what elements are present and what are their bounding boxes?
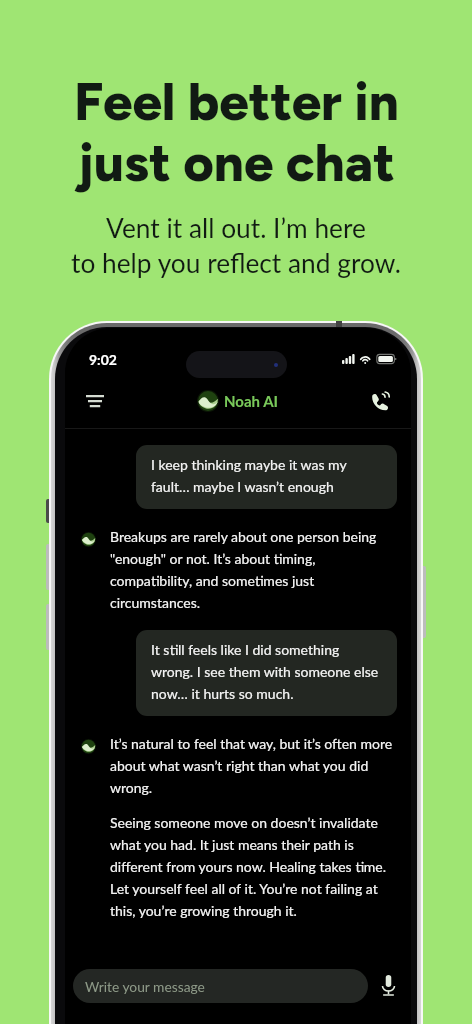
staticText: It still feels like I did something wron… xyxy=(151,641,383,702)
staticText: It’s natural to feel that way, but it’s … xyxy=(110,735,397,796)
staticText: Seeing someone move on doesn’t invalidat… xyxy=(110,814,399,919)
staticText: Feel better in just one chat xyxy=(74,70,399,194)
staticText: Vent it all out. I’m here to help you re… xyxy=(71,212,401,278)
button[interactable]: I keep thinking maybe it was my fault… m… xyxy=(136,445,397,509)
button[interactable]: Voice message xyxy=(374,972,402,1000)
button[interactable]: It still feels like I did something wron… xyxy=(136,630,397,716)
staticText: I keep thinking maybe it was my fault… m… xyxy=(151,456,383,495)
button[interactable]: Call xyxy=(360,385,392,417)
staticText: Breakups are rarely about one person bei… xyxy=(110,528,397,611)
button[interactable]: Write your message xyxy=(73,969,368,1003)
button[interactable]: Menu xyxy=(84,385,116,417)
staticText: Write your message xyxy=(85,978,205,995)
staticText: 9:02 xyxy=(89,351,117,368)
staticText: Noah AI xyxy=(224,392,279,410)
